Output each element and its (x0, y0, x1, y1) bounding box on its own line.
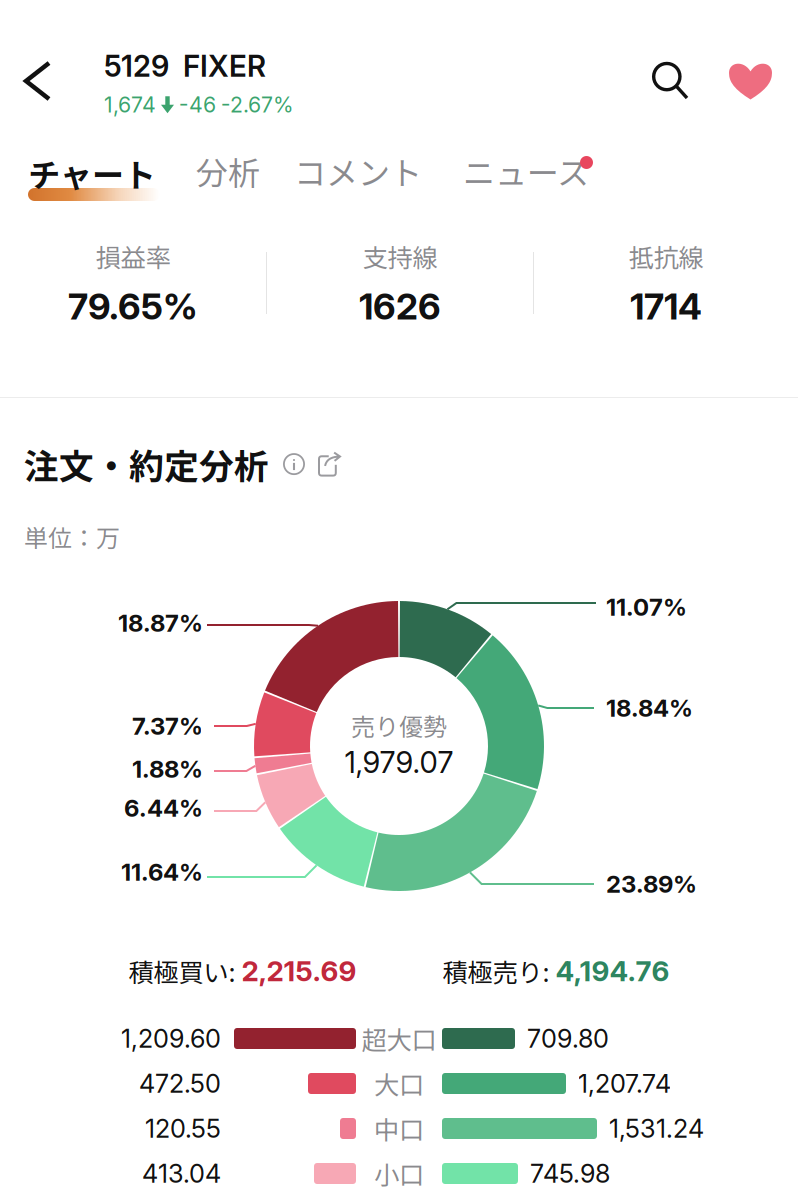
staticText: チャート (28, 150, 156, 196)
button[interactable]: ニュース (463, 151, 619, 204)
staticText: 1.88% (132, 754, 203, 783)
staticText: 1,209.60 (121, 1023, 221, 1054)
staticText: 小口 (374, 1155, 424, 1192)
staticText: 支持線 (362, 238, 437, 275)
staticText: 18.87% (118, 608, 203, 637)
staticText: 18.84% (606, 693, 693, 722)
staticText: 79.65% (68, 285, 198, 328)
staticText: 注文・約定分析 (24, 439, 269, 489)
staticText: 5129 FIXER (104, 48, 266, 84)
button[interactable]: Share (311, 447, 348, 482)
staticText: 損益率 (95, 238, 170, 275)
button[interactable]: チャート (0, 151, 196, 204)
staticText: 2,215.69 (235, 954, 356, 988)
staticText: 11.07% (606, 592, 687, 621)
button[interactable]: Info (269, 447, 311, 481)
staticText: 1714 (630, 285, 702, 328)
staticText: 積極買い: (128, 953, 235, 989)
staticText: 積極売り: (442, 953, 549, 989)
staticText: -46 (179, 92, 216, 118)
staticText: 売り優勢 (351, 708, 447, 743)
staticText: 抵抗線 (628, 238, 703, 275)
staticText: 11.64% (121, 857, 203, 886)
button[interactable]: 分析 (196, 151, 294, 204)
staticText: 7.37% (132, 711, 203, 740)
staticText: 413.04 (142, 1158, 221, 1189)
staticText: 1,979.07 (344, 745, 453, 780)
staticText: ニュース (463, 148, 589, 194)
staticText: 1,674 (104, 92, 156, 118)
staticText: 1,207.74 (578, 1068, 671, 1099)
staticText: -2.67% (221, 92, 294, 118)
button[interactable]: Favorite (707, 16, 798, 113)
button[interactable]: Search (634, 17, 707, 113)
staticText: 709.80 (527, 1023, 609, 1054)
staticText: 1626 (359, 285, 441, 328)
staticText: 6.44% (124, 793, 203, 822)
staticText: 472.50 (139, 1068, 221, 1099)
staticText: 23.89% (606, 869, 697, 898)
staticText: コメント (294, 148, 422, 194)
button[interactable]: Back (0, 16, 104, 114)
staticText: 単位：万 (24, 519, 120, 554)
button[interactable]: コメント (294, 151, 463, 204)
staticText: 745.98 (530, 1158, 610, 1189)
staticText: 1,531.24 (609, 1113, 704, 1144)
staticText: 4,194.76 (549, 954, 669, 988)
staticText: 大口 (374, 1065, 424, 1102)
staticText: 分析 (196, 148, 260, 194)
staticText: 中口 (374, 1110, 424, 1147)
staticText: 超大口 (361, 1020, 436, 1057)
staticText: 120.55 (145, 1113, 221, 1144)
